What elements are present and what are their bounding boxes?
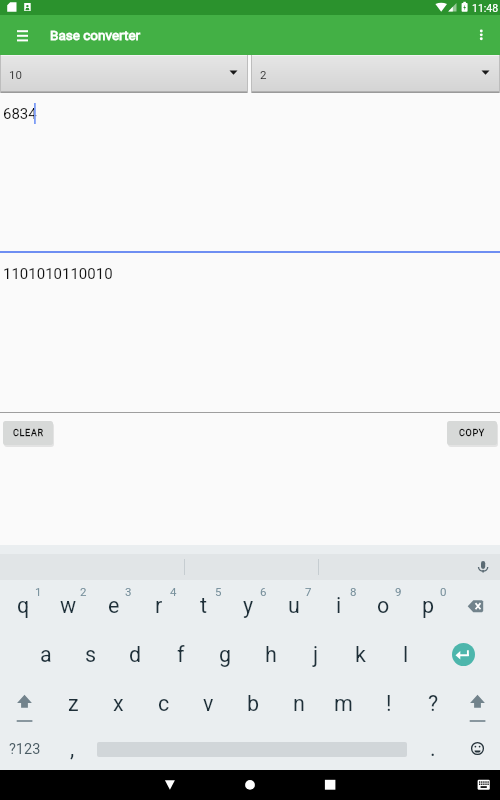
staticText: y: [243, 593, 254, 618]
staticText: 0: [440, 585, 447, 598]
button[interactable]: 6: [226, 583, 271, 625]
staticText: ,: [70, 736, 75, 761]
button[interactable]: s: [68, 632, 113, 674]
button[interactable]: More options: [464, 15, 500, 55]
staticText: s: [85, 642, 97, 667]
button[interactable]: f: [158, 632, 203, 674]
staticText: m: [334, 691, 353, 716]
staticText: v: [203, 691, 214, 716]
button[interactable]: l: [383, 632, 428, 674]
button[interactable]: .: [410, 728, 455, 768]
staticText: w: [60, 593, 77, 618]
staticText: x: [113, 691, 124, 716]
button[interactable]: ?123: [0, 728, 50, 768]
button[interactable]: x: [96, 681, 141, 723]
staticText: e: [108, 593, 120, 618]
staticText: .: [430, 736, 436, 761]
staticText: 1101010110010: [3, 265, 113, 283]
staticText: 8: [350, 585, 357, 598]
button[interactable]: COPY: [447, 421, 497, 445]
staticText: r: [155, 593, 163, 618]
button[interactable]: Recent apps: [300, 770, 360, 800]
staticText: j: [313, 642, 319, 667]
staticText: 10: [9, 68, 22, 81]
staticText: a: [40, 642, 52, 667]
button[interactable]: d: [113, 632, 158, 674]
button[interactable]: k: [338, 632, 383, 674]
button[interactable]: g: [203, 632, 248, 674]
staticText: CLEAR: [13, 428, 44, 439]
staticText: z: [68, 691, 79, 716]
button[interactable]: !: [366, 681, 411, 723]
button[interactable]: 0: [406, 583, 451, 625]
staticText: Base converter: [50, 27, 141, 43]
button[interactable]: h: [248, 632, 293, 674]
staticText: h: [265, 642, 277, 667]
button[interactable]: Voice input: [470, 554, 500, 580]
staticText: k: [355, 642, 366, 667]
button[interactable]: Emoji: [456, 728, 500, 768]
button[interactable]: ?: [411, 681, 456, 723]
button[interactable]: c: [141, 681, 186, 723]
staticText: 4: [170, 585, 177, 598]
staticText: b: [247, 691, 260, 716]
button[interactable]: Back: [140, 770, 200, 800]
button[interactable]: Open navigation menu: [5, 15, 40, 55]
staticText: 2: [80, 585, 87, 598]
staticText: q: [17, 593, 30, 618]
staticText: 6834: [3, 105, 37, 123]
staticText: 1: [35, 585, 42, 598]
button[interactable]: Switch keyboard: [468, 770, 500, 800]
button[interactable]: Enter: [441, 632, 486, 674]
staticText: COPY: [459, 428, 485, 439]
button[interactable]: z: [51, 681, 96, 723]
staticText: n: [293, 691, 305, 716]
staticText: d: [129, 642, 142, 667]
button[interactable]: 1: [1, 583, 46, 625]
button[interactable]: a: [23, 632, 68, 674]
staticText: g: [219, 642, 232, 667]
button[interactable]: m: [321, 681, 366, 723]
button[interactable]: 4: [136, 583, 181, 625]
button[interactable]: 8: [316, 583, 361, 625]
button[interactable]: ,: [50, 728, 95, 768]
button[interactable]: Backspace: [453, 583, 498, 625]
staticText: f: [177, 642, 185, 667]
button[interactable]: Shift: [2, 681, 47, 723]
staticText: 11:48: [472, 2, 499, 14]
staticText: !: [386, 691, 392, 716]
staticText: 3: [125, 585, 132, 598]
staticText: ?123: [9, 741, 41, 758]
button[interactable]: 9: [361, 583, 406, 625]
staticText: ?: [428, 691, 439, 716]
staticText: 7: [305, 585, 312, 598]
button[interactable]: 5: [181, 583, 226, 625]
button[interactable]: j: [293, 632, 338, 674]
staticText: 2: [260, 68, 267, 81]
staticText: u: [288, 593, 300, 618]
button[interactable]: CLEAR: [3, 421, 53, 445]
staticText: 9: [395, 585, 402, 598]
button[interactable]: 3: [91, 583, 136, 625]
button[interactable]: n: [276, 681, 321, 723]
button[interactable]: b: [231, 681, 276, 723]
button[interactable]: v: [186, 681, 231, 723]
button[interactable]: 10: [0, 55, 248, 93]
staticText: i: [336, 593, 342, 618]
staticText: l: [403, 642, 409, 667]
staticText: 6: [260, 585, 267, 598]
staticText: p: [422, 593, 435, 618]
button[interactable]: 2: [46, 583, 91, 625]
staticText: o: [377, 593, 390, 618]
button[interactable]: 7: [271, 583, 316, 625]
button[interactable]: Home: [220, 770, 280, 800]
staticText: 5: [215, 585, 222, 598]
staticText: c: [158, 691, 170, 716]
button[interactable]: 2: [251, 55, 500, 93]
button[interactable]: Shift: [455, 681, 500, 723]
staticText: t: [200, 593, 208, 618]
